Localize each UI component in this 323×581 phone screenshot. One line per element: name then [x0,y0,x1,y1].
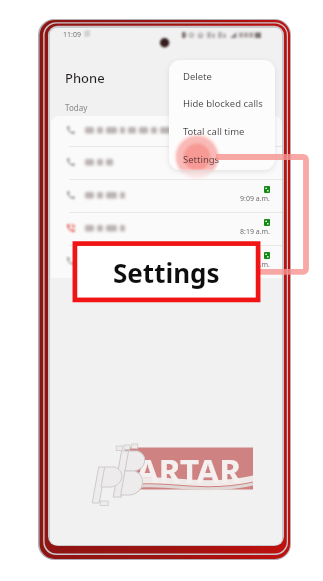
staticText: 9:09 a.m. [240,194,270,204]
staticText: Delete [183,70,212,83]
staticText: Settings [183,153,220,166]
staticText: Total call time [183,125,245,138]
button[interactable]: Total call time [169,118,275,144]
staticText: Settings [113,255,220,290]
staticText: 11:09 [63,30,81,40]
staticText: Phone [65,69,105,87]
button[interactable] [51,117,282,143]
staticText: Today [65,102,88,113]
staticText: ARTAR [136,448,241,493]
button[interactable]: 7:59 a.m. [51,248,282,274]
staticText: 8:19 a.m. [240,227,270,237]
button[interactable]: 8:19 a.m. [51,215,282,241]
button[interactable]: Hide blocked calls [169,90,275,116]
button[interactable]: 9:09 a.m. [51,182,282,208]
button[interactable] [51,149,282,175]
button[interactable]: Settings [75,244,258,300]
button[interactable]: Delete [169,63,275,89]
staticText: Hide blocked calls [183,97,263,110]
staticText: 7:59 a.m. [240,260,270,270]
button[interactable]: Settings [169,146,275,170]
